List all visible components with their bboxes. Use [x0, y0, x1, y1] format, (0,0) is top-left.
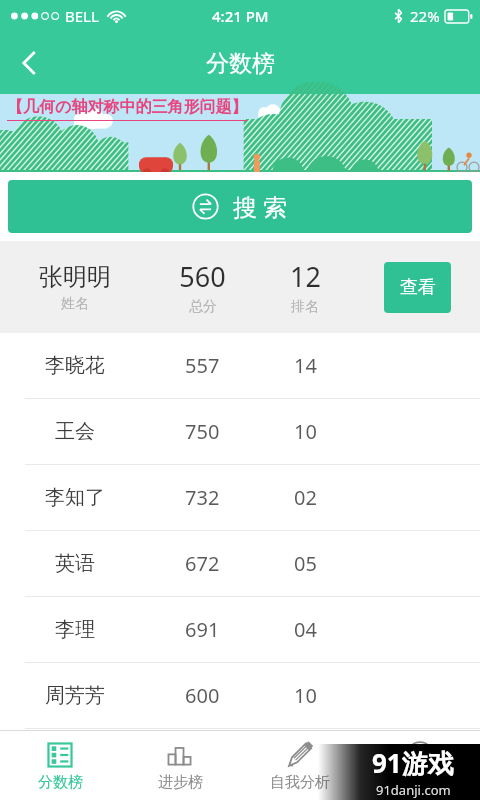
staticText: 672: [185, 550, 220, 577]
staticText: 设置: [405, 773, 435, 792]
staticText: 4:21 PM: [212, 6, 269, 26]
staticText: 排名: [291, 298, 319, 316]
staticText: 10: [294, 418, 317, 445]
button[interactable]: 李理: [0, 597, 480, 663]
button[interactable]: 周芳芳: [0, 663, 480, 729]
staticText: 【几何の轴对称中的三角形问题】: [7, 97, 248, 117]
staticText: 王会: [55, 419, 95, 444]
staticText: 600: [185, 682, 220, 709]
button[interactable]: 设置: [360, 731, 480, 800]
staticText: BELL: [65, 6, 99, 26]
staticText: 05: [294, 550, 317, 577]
staticText: 22%: [410, 6, 440, 26]
staticText: 李知了: [45, 485, 105, 510]
staticText: 李晓花: [45, 353, 105, 378]
staticText: 分数榜: [206, 49, 275, 78]
staticText: 557: [185, 352, 220, 379]
button[interactable]: 自我分析: [240, 731, 360, 800]
button[interactable]: 李知了: [0, 465, 480, 531]
staticText: 张明明: [39, 262, 111, 292]
staticText: 总分: [189, 298, 217, 316]
button[interactable]: Back: [0, 32, 58, 94]
staticText: 750: [185, 418, 220, 445]
staticText: 自我分析: [270, 773, 330, 792]
staticText: 周芳芳: [45, 683, 105, 708]
staticText: 李理: [55, 617, 95, 642]
staticText: 04: [294, 616, 317, 643]
button[interactable]: 英语: [0, 531, 480, 597]
staticText: 10: [294, 682, 317, 709]
staticText: 英语: [55, 551, 95, 576]
staticText: 查看: [400, 276, 436, 299]
button[interactable]: 王会: [0, 399, 480, 465]
staticText: 02: [294, 484, 317, 511]
staticText: 732: [185, 484, 220, 511]
staticText: 91danji.com: [376, 781, 451, 799]
button[interactable]: 搜 索: [8, 180, 472, 233]
button[interactable]: 分数榜: [0, 731, 120, 800]
staticText: 14: [294, 352, 317, 379]
staticText: 12: [290, 258, 321, 295]
button[interactable]: 李晓花: [0, 333, 480, 399]
staticText: 分数榜: [38, 773, 83, 792]
staticText: 560: [179, 258, 226, 295]
button[interactable]: 进步榜: [120, 731, 240, 800]
staticText: 进步榜: [158, 773, 203, 792]
staticText: 691: [185, 616, 220, 643]
button[interactable]: 查看: [384, 262, 451, 313]
staticText: 91游戏: [372, 745, 454, 781]
staticText: 姓名: [61, 295, 89, 313]
staticText: 搜 索: [233, 190, 288, 223]
